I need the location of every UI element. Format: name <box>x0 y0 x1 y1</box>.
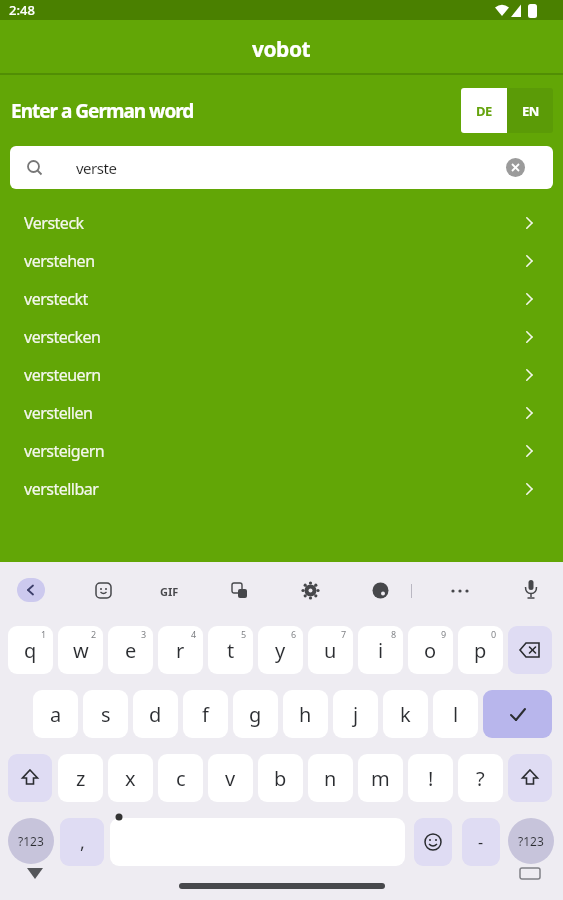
button[interactable] <box>524 580 538 601</box>
staticText: x <box>125 765 136 792</box>
button[interactable]: - <box>462 818 500 866</box>
staticText: c <box>176 765 186 792</box>
button[interactable]: ?123 <box>508 818 554 864</box>
button[interactable]: ?123 <box>8 818 54 864</box>
button[interactable]: Versteck <box>0 204 563 242</box>
button[interactable]: , <box>60 818 104 866</box>
staticText: i <box>378 637 384 664</box>
button[interactable]: n <box>308 754 353 802</box>
button[interactable]: z <box>58 754 103 802</box>
button[interactable] <box>450 588 470 594</box>
button[interactable] <box>231 582 248 599</box>
button[interactable]: s <box>83 690 128 738</box>
staticText: f <box>202 701 209 728</box>
button[interactable]: versteigern <box>0 432 563 470</box>
staticText: 2 <box>91 628 97 640</box>
staticText: verstecken <box>24 326 101 348</box>
staticText: 5 <box>241 628 247 640</box>
button[interactable] <box>483 690 552 738</box>
staticText: 9 <box>441 628 447 640</box>
button[interactable] <box>17 578 45 602</box>
button[interactable]: verstellbar <box>0 470 563 508</box>
button[interactable]: w <box>58 626 103 674</box>
button[interactable] <box>95 582 112 599</box>
button[interactable]: a <box>33 690 78 738</box>
button[interactable] <box>506 158 525 177</box>
staticText: , <box>80 830 85 855</box>
staticText: verste <box>76 158 117 178</box>
staticText: q <box>24 637 37 664</box>
button[interactable]: k <box>383 690 428 738</box>
staticText: versteigern <box>24 440 105 462</box>
staticText: b <box>274 765 287 792</box>
button[interactable]: h <box>283 690 328 738</box>
staticText: vobot <box>252 35 311 64</box>
staticText: a <box>50 701 62 728</box>
button[interactable] <box>508 754 552 802</box>
button[interactable] <box>372 582 389 599</box>
button[interactable]: m <box>358 754 403 802</box>
staticText: 2:48 <box>9 1 35 19</box>
staticText: Enter a German word <box>11 98 194 124</box>
staticText: v <box>225 765 236 792</box>
button[interactable]: i <box>358 626 403 674</box>
button[interactable]: q <box>8 626 53 674</box>
button[interactable]: u <box>308 626 353 674</box>
staticText: z <box>76 765 86 792</box>
staticText: ? <box>476 765 485 792</box>
button[interactable]: l <box>433 690 478 738</box>
button[interactable]: verstehen <box>0 242 563 280</box>
button[interactable]: versteckt <box>0 280 563 318</box>
button[interactable]: GIF <box>160 584 179 599</box>
button[interactable]: p <box>458 626 503 674</box>
staticText: versteckt <box>24 288 88 310</box>
staticText: verstellbar <box>24 478 99 500</box>
staticText: - <box>478 831 484 853</box>
staticText: y <box>275 637 286 664</box>
staticText: Versteck <box>24 212 84 234</box>
button[interactable]: DE <box>461 88 507 133</box>
staticText: l <box>453 701 459 728</box>
staticText: m <box>371 765 390 792</box>
staticText: 8 <box>391 628 397 640</box>
staticText: DE <box>476 102 492 120</box>
button[interactable]: f <box>183 690 228 738</box>
button[interactable] <box>414 818 452 866</box>
staticText: ?123 <box>518 833 544 849</box>
staticText: EN <box>522 102 539 120</box>
staticText: ?123 <box>18 833 44 849</box>
button[interactable]: ? <box>458 754 503 802</box>
button[interactable]: v <box>208 754 253 802</box>
button[interactable]: EN <box>507 88 553 133</box>
button[interactable] <box>508 626 552 674</box>
button[interactable]: g <box>233 690 278 738</box>
button[interactable]: versteuern <box>0 356 563 394</box>
button[interactable] <box>8 754 52 802</box>
staticText: 1 <box>41 628 47 640</box>
button[interactable] <box>302 582 319 599</box>
staticText: p <box>474 637 487 664</box>
button[interactable]: e <box>108 626 153 674</box>
button[interactable]: t <box>208 626 253 674</box>
button[interactable]: c <box>158 754 203 802</box>
button[interactable]: r <box>158 626 203 674</box>
button[interactable]: y <box>258 626 303 674</box>
button[interactable]: x <box>108 754 153 802</box>
staticText: verstellen <box>24 402 93 424</box>
button[interactable]: o <box>408 626 453 674</box>
button[interactable] <box>110 818 405 866</box>
staticText: s <box>101 701 111 728</box>
staticText: k <box>400 701 411 728</box>
button[interactable]: j <box>333 690 378 738</box>
staticText: r <box>176 637 185 664</box>
staticText: j <box>353 701 359 728</box>
button[interactable]: ! <box>408 754 453 802</box>
button[interactable]: verstecken <box>0 318 563 356</box>
staticText: ! <box>428 765 434 792</box>
button[interactable]: d <box>133 690 178 738</box>
button[interactable]: b <box>258 754 303 802</box>
button[interactable]: verstellen <box>0 394 563 432</box>
staticText: g <box>249 701 262 728</box>
button[interactable]: verste <box>10 146 553 189</box>
staticText: 7 <box>341 628 347 640</box>
